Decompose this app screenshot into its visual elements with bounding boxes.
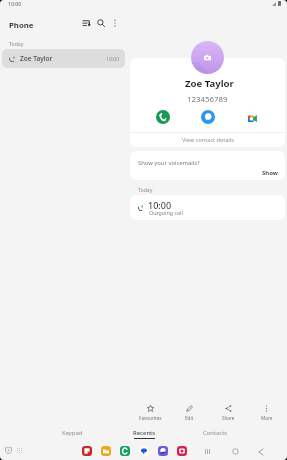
staticText: Today <box>138 186 153 193</box>
staticText: 10:00 <box>8 0 22 7</box>
staticText: Zoe Taylor <box>185 77 234 90</box>
staticText: Keypad <box>62 429 83 437</box>
staticText: Contacts <box>203 429 228 437</box>
button[interactable]: Video call <box>243 108 261 126</box>
staticText: 10:00 <box>106 55 120 62</box>
button[interactable]: Zoe Taylor <box>2 49 125 68</box>
staticText: Zoe Taylor <box>20 54 53 63</box>
button[interactable]: More options <box>108 16 122 30</box>
button[interactable]: App 1 <box>82 446 92 456</box>
button[interactable]: Message <box>199 108 217 126</box>
staticText: Recents <box>133 429 156 437</box>
button[interactable]: App 3 <box>120 446 130 456</box>
button[interactable]: Share <box>209 401 248 421</box>
button[interactable]: More <box>247 401 286 421</box>
staticText: View contact details <box>182 136 234 144</box>
button[interactable]: Recent apps <box>200 444 215 459</box>
button[interactable]: App 5 <box>158 446 168 456</box>
button[interactable]: Sort <box>80 16 94 30</box>
staticText: 123456789 <box>187 94 228 105</box>
staticText: More <box>261 415 273 421</box>
button[interactable]: App 2 <box>101 446 111 456</box>
button[interactable]: Recents <box>118 425 170 441</box>
staticText: Today <box>9 40 24 47</box>
button[interactable]: Search <box>94 16 108 30</box>
button[interactable]: View contact details <box>130 132 285 147</box>
button[interactable]: Show <box>259 168 281 178</box>
button[interactable]: Edit <box>170 401 209 421</box>
button[interactable]: All apps <box>13 444 25 456</box>
button[interactable]: Screen capture <box>2 444 14 456</box>
staticText: Edit <box>185 415 194 421</box>
button[interactable]: Keypad <box>46 425 98 441</box>
button[interactable]: Contacts <box>189 425 241 441</box>
staticText: Outgoing call <box>149 209 183 216</box>
button[interactable]: App 4 <box>139 446 149 456</box>
button[interactable]: Call <box>154 108 172 126</box>
button[interactable]: App 6 <box>177 446 187 456</box>
staticText: 10:00 <box>148 199 172 211</box>
staticText: Show your voicemails? <box>138 159 200 167</box>
staticText: Share <box>222 415 235 421</box>
staticText: Favourites <box>139 415 162 421</box>
button[interactable]: 10:00 <box>130 195 285 220</box>
button[interactable]: Home <box>228 444 243 459</box>
staticText: Show <box>262 169 278 177</box>
button[interactable]: Back <box>253 444 268 459</box>
staticText: Phone <box>9 20 34 31</box>
button[interactable]: Favourites <box>131 401 170 421</box>
